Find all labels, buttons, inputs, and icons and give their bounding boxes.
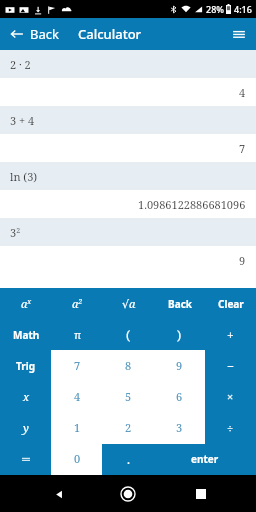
button[interactable]: 5 xyxy=(103,381,154,412)
button[interactable]: 3 + 4 xyxy=(0,106,256,134)
staticText: 1.0986122886681096 xyxy=(138,197,246,212)
staticText: Math xyxy=(13,328,40,342)
button[interactable]: 3 xyxy=(154,412,205,443)
staticText: 7 xyxy=(74,358,81,373)
staticText: − xyxy=(227,358,234,374)
button[interactable]: 0 xyxy=(52,443,103,474)
staticText: π xyxy=(74,327,82,342)
staticText: 32 xyxy=(10,225,21,240)
button[interactable]: ax xyxy=(0,288,52,319)
staticText: √a xyxy=(122,296,136,311)
button[interactable]: 4 xyxy=(52,381,103,412)
button[interactable]: Clear xyxy=(205,288,256,319)
button[interactable]: 1.0986122886681096 xyxy=(0,190,256,218)
button[interactable]: ln (3) xyxy=(0,162,256,190)
staticText: 4 xyxy=(239,85,246,100)
staticText: ln (3) xyxy=(10,169,38,184)
button[interactable]: x xyxy=(0,381,52,412)
staticText: 3 xyxy=(176,420,183,435)
staticText: 2 xyxy=(125,420,132,435)
button[interactable]: Trig xyxy=(0,350,52,381)
button[interactable]: Equals xyxy=(0,443,52,474)
button[interactable]: 9 xyxy=(154,350,205,381)
button[interactable]: Back xyxy=(48,483,70,505)
button[interactable]: + xyxy=(205,319,256,350)
button[interactable]: . xyxy=(103,443,154,474)
button[interactable]: ) xyxy=(154,319,205,350)
button[interactable]: Menu xyxy=(222,21,256,47)
staticText: Back xyxy=(168,297,192,311)
button[interactable]: − xyxy=(205,350,256,381)
staticText: 4:16 xyxy=(234,3,252,15)
staticText: 5 xyxy=(125,389,132,404)
button[interactable]: 7 xyxy=(52,350,103,381)
button[interactable]: 2 · 2 xyxy=(0,50,256,78)
staticText: Clear xyxy=(218,297,244,311)
staticText: Calculator xyxy=(78,25,142,43)
staticText: 28% xyxy=(206,3,224,15)
button[interactable]: Math xyxy=(0,319,52,350)
staticText: 4 xyxy=(74,389,81,404)
staticText: ) xyxy=(177,327,182,343)
staticText: 6 xyxy=(176,389,183,404)
button[interactable]: y xyxy=(0,412,52,443)
button[interactable]: Home xyxy=(117,483,139,505)
button[interactable]: 8 xyxy=(103,350,154,381)
button[interactable]: a2 xyxy=(52,288,103,319)
staticText: ax xyxy=(21,296,32,311)
staticText: x xyxy=(23,389,30,404)
staticText: 8 xyxy=(125,358,132,373)
button[interactable]: Recents xyxy=(190,483,212,505)
button[interactable]: Back xyxy=(154,288,205,319)
button[interactable]: × xyxy=(205,381,256,412)
staticText: × xyxy=(227,389,234,404)
staticText: enter xyxy=(191,452,219,466)
staticText: a2 xyxy=(72,296,83,311)
button[interactable]: enter xyxy=(154,443,256,474)
button[interactable]: 32 xyxy=(0,218,256,246)
button[interactable]: ( xyxy=(103,319,154,350)
button[interactable]: 4 xyxy=(0,78,256,106)
staticText: . xyxy=(127,451,131,467)
staticText: + xyxy=(227,327,234,343)
staticText: 1 xyxy=(74,420,81,435)
button[interactable]: Back xyxy=(0,21,67,47)
button[interactable]: 1 xyxy=(52,412,103,443)
button[interactable]: π xyxy=(52,319,103,350)
staticText: Trig xyxy=(16,359,36,373)
staticText: 0 xyxy=(74,451,81,466)
button[interactable]: 9 xyxy=(0,246,256,274)
button[interactable]: 7 xyxy=(0,134,256,162)
staticText: 3 + 4 xyxy=(10,113,35,128)
button[interactable]: 6 xyxy=(154,381,205,412)
button[interactable]: Square root xyxy=(103,288,154,319)
staticText: 2 · 2 xyxy=(10,57,31,72)
button[interactable]: 2 xyxy=(103,412,154,443)
staticText: Back xyxy=(30,25,59,43)
staticText: 9 xyxy=(176,358,183,373)
staticText: 9 xyxy=(239,253,246,268)
staticText: ÷ xyxy=(227,420,234,435)
button[interactable]: ÷ xyxy=(205,412,256,443)
staticText: y xyxy=(23,420,29,435)
staticText: ( xyxy=(126,327,131,343)
staticText: 7 xyxy=(239,141,246,156)
